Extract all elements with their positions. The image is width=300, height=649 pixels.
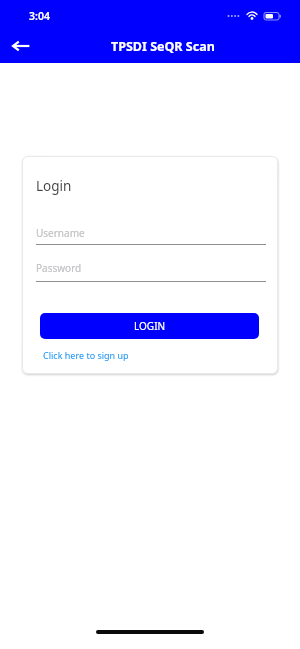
button[interactable]: Password xyxy=(36,255,266,282)
staticText: Username xyxy=(36,226,85,240)
button[interactable]: LOGIN xyxy=(40,313,259,339)
staticText: 3:04 xyxy=(29,9,50,23)
staticText: Login xyxy=(36,177,72,195)
staticText: Password xyxy=(36,261,82,275)
staticText: LOGIN xyxy=(134,319,166,333)
button[interactable]: Username xyxy=(36,218,266,245)
staticText: TPSDI SeQR Scan xyxy=(111,38,215,55)
staticText: Click here to sign up xyxy=(43,349,129,361)
button[interactable]: Click here to sign up xyxy=(40,346,132,364)
button[interactable] xyxy=(6,32,36,60)
